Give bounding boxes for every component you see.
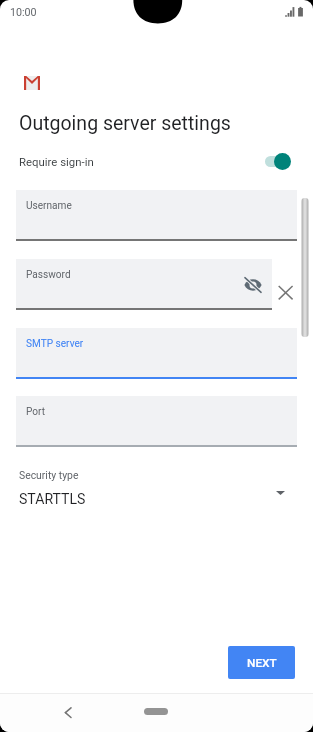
staticText: STARTTLS: [19, 491, 86, 508]
staticText: Username: [26, 200, 72, 212]
button[interactable]: STARTTLS: [0, 488, 313, 510]
button[interactable]: Password: [16, 259, 272, 310]
button[interactable]: Open security type menu: [276, 491, 285, 495]
staticText: NEXT: [247, 656, 277, 670]
button[interactable]: Back: [58, 707, 73, 723]
staticText: Require sign-in: [19, 155, 94, 168]
staticText: 10:00: [10, 6, 37, 19]
button[interactable]: Clear password: [277, 284, 295, 302]
button[interactable]: Require sign-in: [0, 148, 313, 174]
staticText: Port: [26, 406, 46, 418]
staticText: SMTP server: [26, 338, 84, 350]
button[interactable]: SMTP server: [16, 328, 297, 379]
staticText: Security type: [19, 469, 79, 481]
button[interactable]: NEXT: [228, 646, 295, 679]
staticText: Password: [26, 269, 71, 281]
button[interactable]: Port: [16, 396, 297, 447]
staticText: Outgoing server settings: [19, 112, 231, 135]
button[interactable]: Show password: [244, 277, 262, 293]
button[interactable]: Username: [16, 190, 297, 241]
button[interactable]: Home: [144, 708, 168, 715]
